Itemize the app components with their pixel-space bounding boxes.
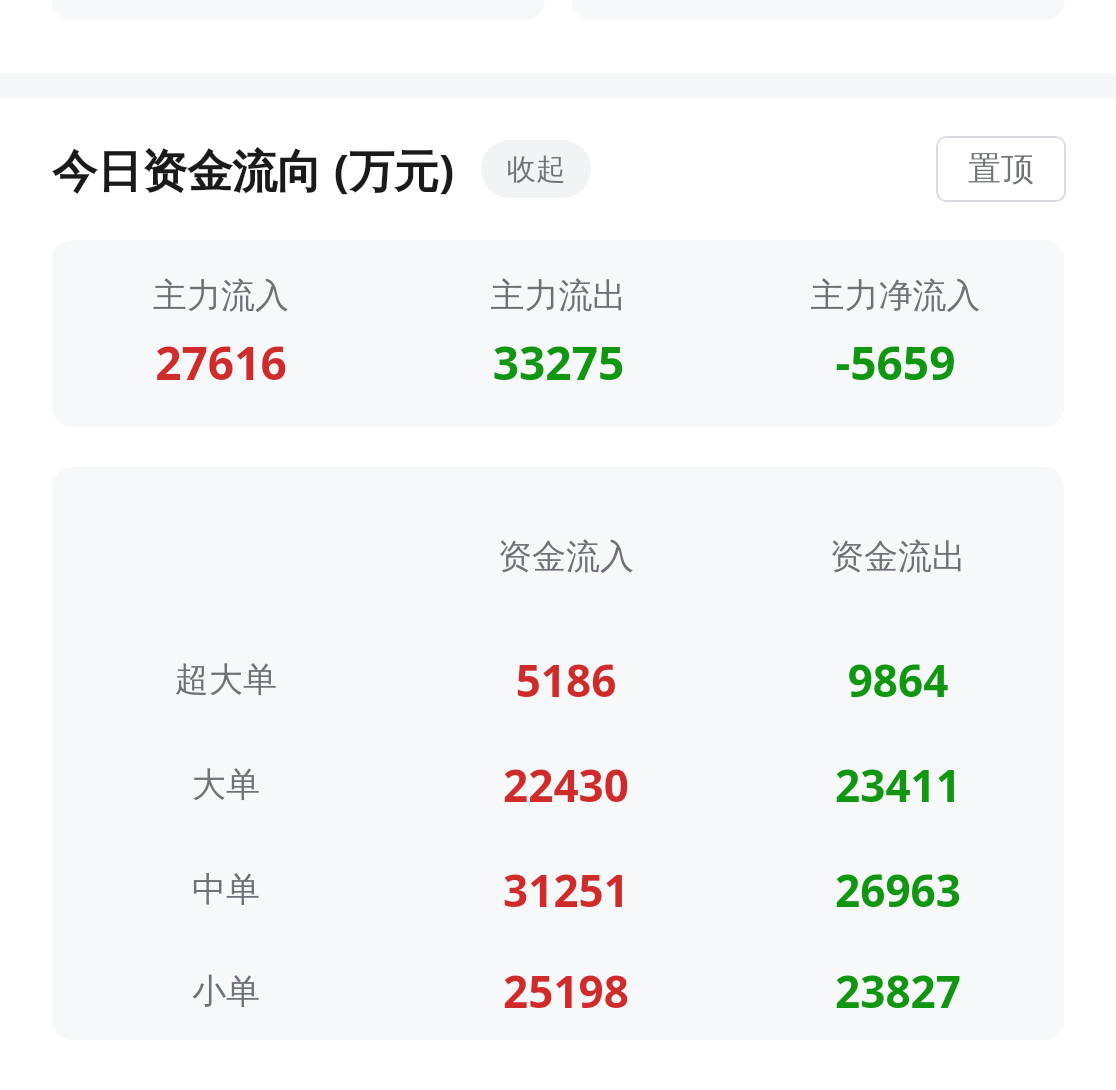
- button[interactable]: 小单: [52, 942, 1064, 1040]
- staticText: 大单: [52, 763, 400, 806]
- button[interactable]: 主力流出: [390, 274, 727, 394]
- button[interactable]: 中单: [52, 837, 1064, 942]
- button[interactable]: 超大单: [52, 627, 1064, 732]
- button[interactable]: 大单: [52, 732, 1064, 837]
- staticText: 主力流入: [52, 274, 390, 317]
- staticText: 27616: [52, 331, 390, 394]
- button[interactable]: 主力流入: [52, 240, 1064, 427]
- staticText: 今日资金流向 (万元): [52, 139, 455, 200]
- staticText: 中单: [52, 868, 400, 911]
- staticText: 主力净流入: [727, 274, 1064, 317]
- staticText: 5186: [400, 650, 732, 710]
- button[interactable]: 主力净流入: [727, 274, 1064, 394]
- staticText: 31251: [400, 860, 732, 920]
- staticText: 主力流出: [390, 274, 727, 317]
- button[interactable]: 置顶: [936, 136, 1066, 202]
- staticText: 超大单: [52, 658, 400, 701]
- staticText: 33275: [390, 331, 727, 394]
- staticText: 置顶: [968, 148, 1034, 190]
- button[interactable]: 主力流入: [52, 274, 390, 394]
- staticText: 23827: [732, 961, 1064, 1021]
- button[interactable]: 收起: [481, 140, 591, 198]
- staticText: 小单: [52, 970, 400, 1013]
- staticText: 23411: [732, 755, 1064, 815]
- button[interactable]: 资金流入: [52, 467, 1064, 1040]
- staticText: 资金流出: [732, 535, 1064, 578]
- staticText: 22430: [400, 755, 732, 815]
- staticText: 26963: [732, 860, 1064, 920]
- staticText: 收起: [507, 151, 565, 188]
- staticText: 资金流入: [400, 535, 732, 578]
- staticText: -5659: [727, 331, 1064, 394]
- staticText: 9864: [732, 650, 1064, 710]
- staticText: 25198: [400, 961, 732, 1021]
